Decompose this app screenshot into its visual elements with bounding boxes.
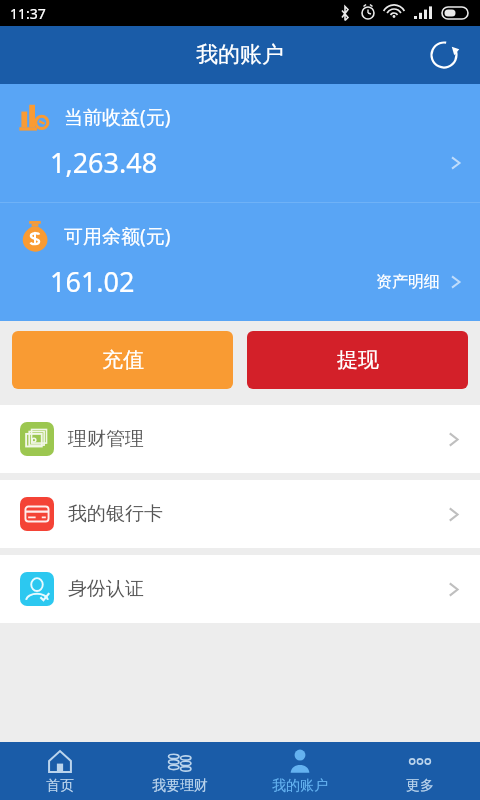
staticText: 我的账户	[272, 777, 328, 795]
staticText: 更多	[406, 777, 434, 795]
button[interactable]: 身份认证	[0, 555, 480, 623]
button[interactable]: 提现	[247, 331, 468, 389]
staticText: 11:37	[10, 4, 46, 23]
staticText: 首页	[46, 777, 74, 795]
staticText: 我要理财	[152, 777, 208, 795]
button[interactable]: Refresh	[422, 33, 466, 77]
staticText: 身份认证	[68, 577, 144, 601]
button[interactable]: 我要理财	[120, 742, 240, 800]
button[interactable]: 更多	[360, 742, 480, 800]
staticText: 当前收益(元)	[64, 104, 171, 130]
button[interactable]: 可用余额(元)	[0, 203, 480, 321]
button[interactable]: 首页	[0, 742, 120, 800]
staticText: 可用余额(元)	[64, 223, 171, 249]
staticText: 我的账户	[196, 41, 284, 69]
staticText: 理财管理	[68, 427, 144, 451]
staticText: 我的银行卡	[68, 502, 163, 526]
button[interactable]: 充值	[12, 331, 233, 389]
button[interactable]: 我的账户	[240, 742, 360, 800]
staticText: 资产明细	[376, 272, 440, 292]
button[interactable]: 我的银行卡	[0, 480, 480, 548]
button[interactable]: 当前收益(元)	[0, 84, 480, 202]
staticText: 提现	[337, 347, 379, 373]
staticText: 161.02	[50, 263, 135, 300]
button[interactable]: 理财管理	[0, 405, 480, 473]
staticText: 充值	[102, 347, 144, 373]
staticText: 1,263.48	[50, 144, 158, 181]
